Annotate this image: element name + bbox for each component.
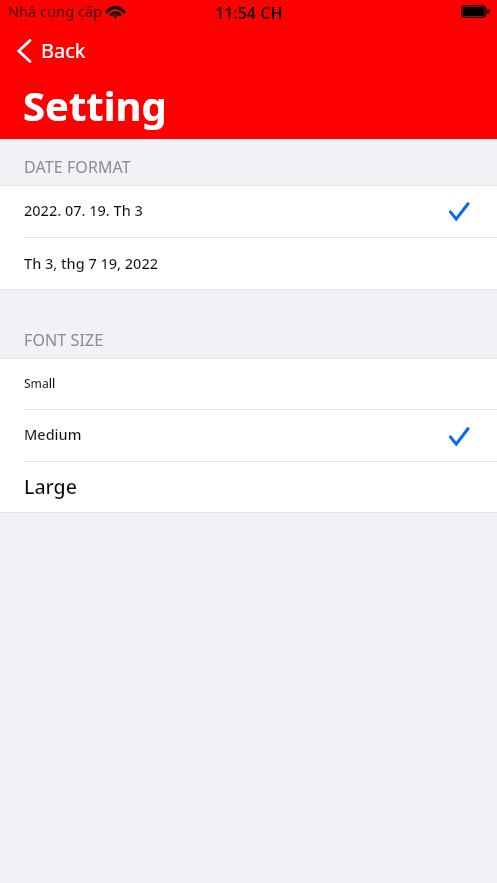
button[interactable]: Back (1, 34, 98, 68)
staticText: DATE FORMAT (24, 156, 131, 178)
staticText: Back (41, 37, 86, 64)
button[interactable]: Small (0, 358, 497, 409)
other: Battery full (461, 5, 490, 18)
staticText: Setting (23, 78, 167, 132)
staticText: Th 3, thg 7 19, 2022 (24, 253, 158, 273)
button[interactable]: 2022. 07. 19. Th 3 (0, 185, 497, 237)
button[interactable]: Th 3, thg 7 19, 2022 (0, 237, 497, 289)
button[interactable]: Large (0, 462, 497, 514)
staticText: FONT SIZE (24, 329, 104, 351)
staticText: 2022. 07. 19. Th 3 (24, 200, 143, 220)
button[interactable]: Medium (0, 410, 497, 463)
staticText: Medium (24, 424, 82, 444)
staticText: Large (24, 473, 77, 500)
other: Wi-Fi (105, 0, 126, 19)
staticText: 11:54 CH (215, 2, 283, 24)
staticText: Nhà cung cấp (8, 1, 103, 21)
staticText: Small (24, 375, 56, 391)
